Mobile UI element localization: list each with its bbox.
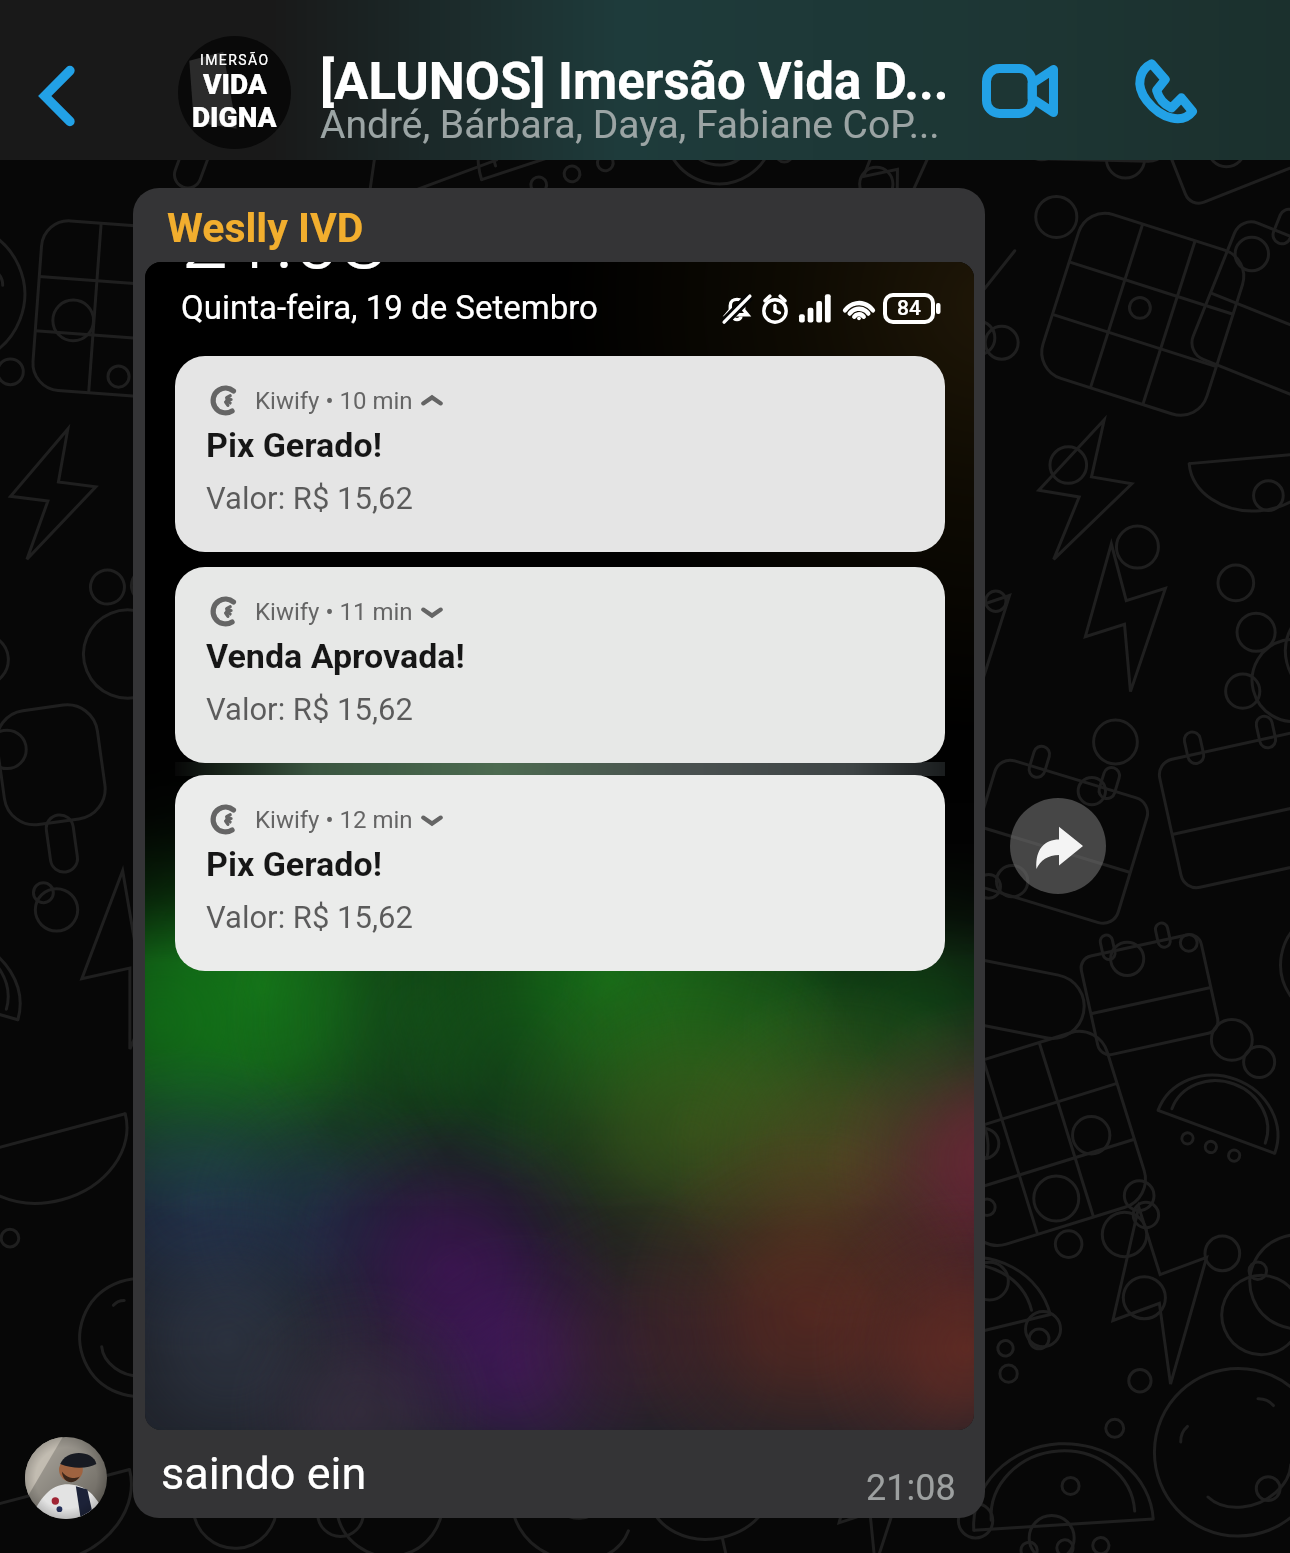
staticText: Pix Gerado! (206, 425, 382, 465)
button[interactable]: Kiwify • 12 min (175, 775, 945, 971)
button[interactable]: [ALUNOS] Imersão Vida D... (320, 52, 980, 170)
button[interactable]: Forward (1010, 798, 1106, 894)
button[interactable]: Kiwify • 11 min (175, 567, 945, 763)
staticText: André, Bárbara, Daya, Fabiane CoP... (320, 102, 940, 148)
staticText: Quinta-feira, 19 de Setembro (181, 288, 598, 327)
button[interactable]: Video call (965, 36, 1075, 146)
staticText: [ALUNOS] Imersão Vida D... (320, 52, 949, 112)
staticText: saindo ein (161, 1447, 367, 1500)
staticText: Valor: R$ 15,62 (206, 691, 413, 727)
button[interactable]: Sender avatar (25, 1437, 107, 1519)
staticText: 21:08 (181, 262, 388, 289)
staticText: Kiwify • 11 min (255, 598, 413, 626)
staticText: Valor: R$ 15,62 (206, 899, 413, 935)
staticText: VIDA (203, 68, 267, 101)
staticText: Valor: R$ 15,62 (206, 480, 413, 516)
button[interactable]: Kiwify • 10 min (175, 356, 945, 552)
button[interactable]: Weslly IVD (133, 188, 985, 1518)
button[interactable]: Voice call (1109, 36, 1219, 146)
staticText: Pix Gerado! (206, 844, 382, 884)
button[interactable]: Group photo (178, 36, 291, 149)
staticText: 21:08 (866, 1467, 956, 1509)
staticText: Weslly IVD (167, 204, 364, 252)
staticText: Kiwify • 12 min (255, 806, 413, 834)
staticText: DIGNA (192, 101, 277, 134)
staticText: 84 (897, 296, 921, 321)
staticText: IMERSÃO (200, 52, 270, 68)
button[interactable]: Shared screenshot (145, 262, 974, 1430)
staticText: Venda Aprovada! (206, 636, 465, 676)
staticText: Kiwify • 10 min (255, 387, 413, 415)
button[interactable]: Back (0, 0, 122, 160)
